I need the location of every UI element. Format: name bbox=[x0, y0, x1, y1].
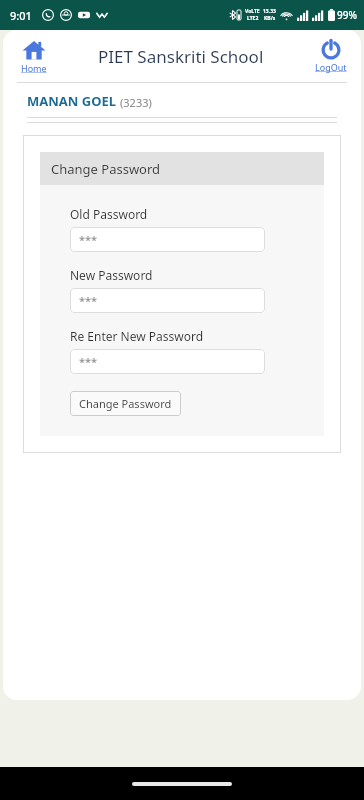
staticText: Change Password bbox=[51, 160, 161, 178]
staticText: MANAN GOEL bbox=[27, 92, 117, 110]
staticText: KB/s bbox=[264, 15, 276, 22]
staticText: *** bbox=[79, 293, 98, 308]
staticText: Old Password bbox=[70, 206, 148, 222]
staticText: 13.33 bbox=[263, 8, 276, 15]
staticText: LTE2 bbox=[247, 15, 259, 22]
staticText: 99% bbox=[337, 8, 357, 22]
staticText: *** bbox=[79, 354, 98, 369]
button[interactable]: *** bbox=[70, 227, 265, 252]
staticText: Re Enter New Password bbox=[70, 328, 204, 344]
staticText: New Password bbox=[70, 267, 153, 283]
staticText: (3233) bbox=[120, 95, 152, 110]
button[interactable]: Home bbox=[17, 36, 51, 76]
button[interactable]: *** bbox=[70, 288, 265, 313]
staticText: *** bbox=[79, 232, 98, 247]
staticText: PIET Sanskriti School bbox=[98, 45, 264, 68]
button[interactable]: Change Password bbox=[70, 391, 181, 416]
staticText: VoLTE bbox=[245, 8, 260, 15]
button[interactable]: *** bbox=[70, 349, 265, 374]
staticText: Home bbox=[21, 62, 47, 74]
button[interactable]: LogOut bbox=[311, 37, 351, 75]
staticText: LogOut bbox=[315, 61, 347, 73]
staticText: 9:01 bbox=[10, 8, 32, 23]
staticText: Change Password bbox=[79, 396, 172, 411]
